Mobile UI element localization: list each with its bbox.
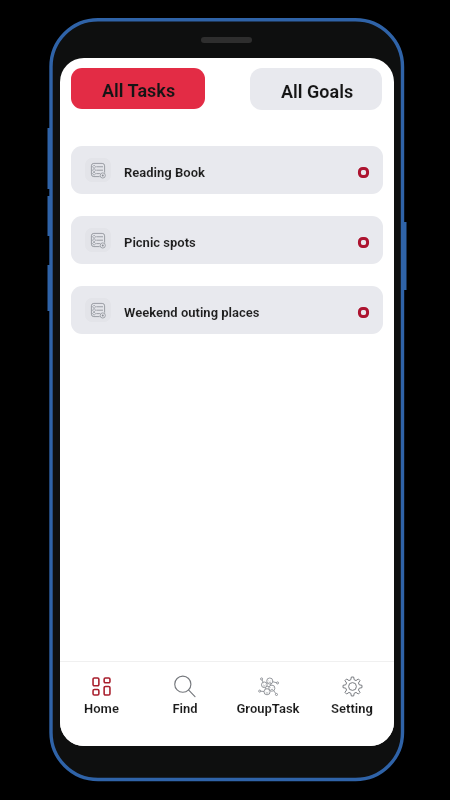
- staticText: Reading Book: [124, 165, 205, 180]
- button[interactable]: Weekend outing places: [71, 286, 383, 334]
- button[interactable]: Settings: [310, 662, 394, 746]
- staticText: Home: [84, 701, 119, 716]
- button[interactable]: Find: [143, 662, 226, 746]
- staticText: All Goals: [281, 81, 354, 102]
- staticText: All Tasks: [102, 80, 176, 101]
- staticText: GroupTask: [236, 701, 300, 716]
- button[interactable]: Reading Book: [71, 146, 383, 194]
- staticText: Setting: [331, 701, 373, 716]
- staticText: Weekend outing places: [124, 305, 260, 320]
- staticText: Find: [172, 701, 198, 716]
- button[interactable]: Group tasks: [226, 662, 310, 746]
- staticText: Picnic spots: [124, 235, 196, 250]
- button[interactable]: All Tasks: [71, 68, 205, 109]
- button[interactable]: Home: [60, 662, 143, 746]
- button[interactable]: Picnic spots: [71, 216, 383, 264]
- button[interactable]: All Goals: [250, 68, 382, 110]
